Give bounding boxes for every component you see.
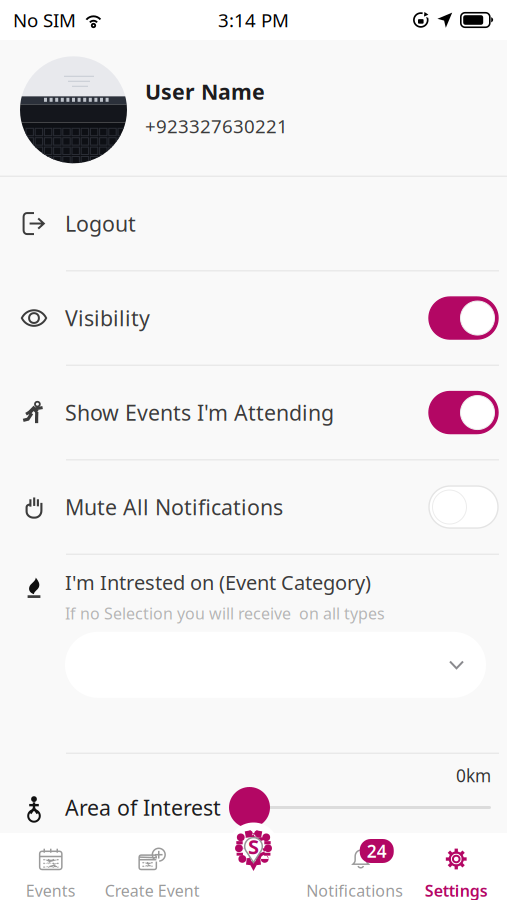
staticText: Visibility [65,304,150,332]
button[interactable]: Visibility [429,297,498,339]
staticText: Area of Interest [65,793,221,822]
staticText: Settings [425,880,488,900]
button[interactable]: Show Events I'm Attending [429,392,498,434]
staticText: Mute All Notifications [65,493,283,521]
button[interactable]: User Name [0,40,507,176]
staticText: Events [26,880,76,900]
button[interactable]: Logout [0,177,507,270]
staticText: No SIM [13,8,76,32]
button[interactable]: Events [0,833,101,900]
button[interactable]: Select event category [65,632,486,698]
staticText: User Name [145,77,265,105]
button[interactable]: 24 [304,833,405,900]
button[interactable]: Mute All Notifications [429,486,498,528]
staticText: Show Events I'm Attending [65,398,334,427]
staticText: Create Event [105,880,200,900]
staticText: If no Selection you will receive on all … [65,603,385,624]
staticText: Notifications [306,880,403,900]
staticText: S [248,833,259,860]
staticText: Logout [65,209,136,238]
button[interactable]: Create Event [101,833,203,900]
staticText: 3:14 PM [218,8,289,32]
staticText: 0km [456,764,491,787]
staticText: 24 [367,839,387,862]
button[interactable]: Home [227,822,279,874]
button[interactable]: Settings [405,833,507,900]
staticText: +923327630221 [145,114,288,138]
staticText: I'm Intrested on (Event Category) [65,569,371,596]
